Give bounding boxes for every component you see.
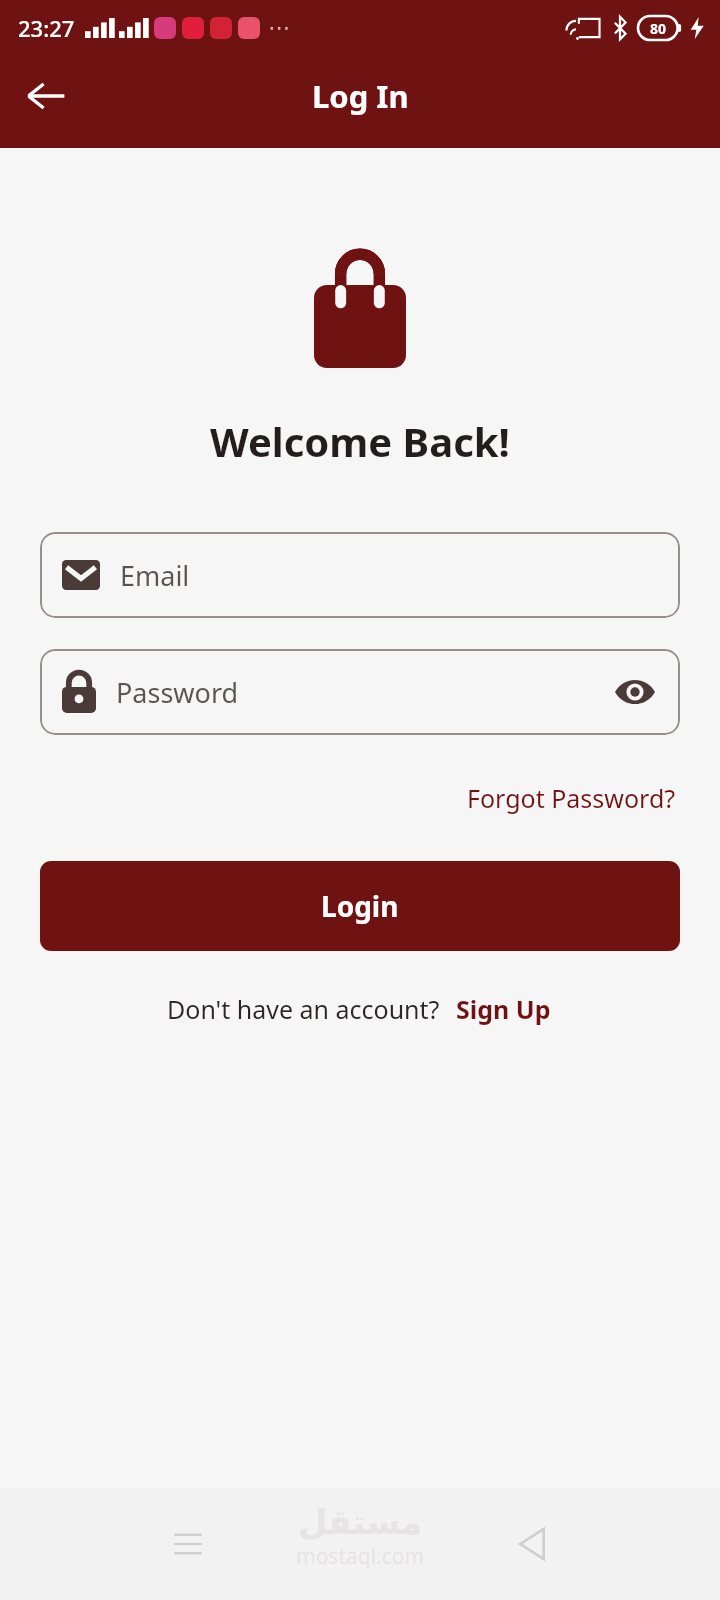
staticText: Forgot Password? (467, 781, 676, 815)
staticText: Sign Up (456, 992, 551, 1026)
button[interactable]: Password (40, 649, 680, 735)
button[interactable]: Email (40, 532, 680, 618)
staticText: Log In (312, 75, 409, 117)
staticText: مستقل (298, 1502, 423, 1542)
staticText: Login (321, 887, 399, 925)
staticText: Password (116, 674, 239, 711)
staticText: 80 (650, 19, 667, 38)
button[interactable]: Forgot Password? (463, 777, 680, 819)
button[interactable]: Recent apps (160, 1516, 216, 1572)
staticText: 23:27 (18, 13, 75, 43)
button[interactable]: Login (40, 861, 680, 951)
staticText: ⋯ (268, 15, 290, 41)
staticText: Email (120, 557, 190, 594)
button[interactable]: Sign Up (454, 989, 553, 1029)
staticText: mostaql.com (296, 1542, 425, 1571)
button[interactable]: Back (20, 70, 72, 122)
staticText: Welcome Back! (210, 414, 510, 468)
staticText: Don't have an account? (167, 992, 440, 1026)
button[interactable]: Show password (612, 669, 658, 715)
button[interactable]: Back (504, 1516, 560, 1572)
